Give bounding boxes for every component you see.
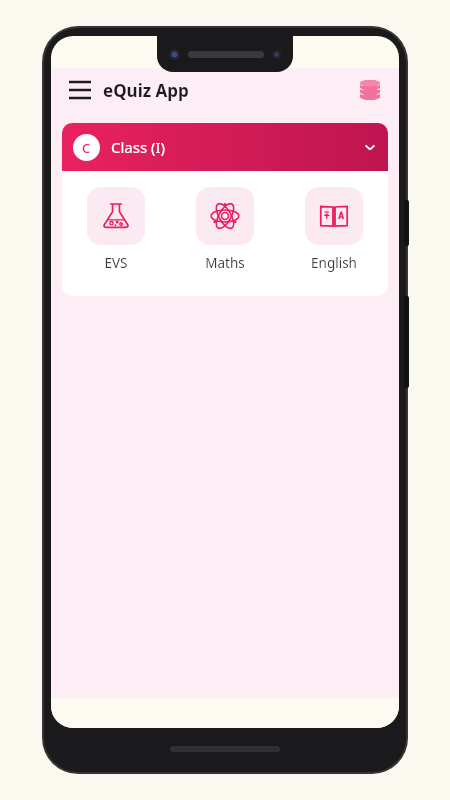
staticText: Class (I) <box>111 137 166 157</box>
button[interactable]: English <box>279 185 388 274</box>
button[interactable]: C <box>62 123 388 171</box>
button[interactable]: Maths <box>170 185 279 274</box>
staticText: EVS <box>104 254 128 272</box>
staticText: Maths <box>205 254 245 272</box>
staticText: C <box>82 139 91 157</box>
staticText: English <box>311 254 357 272</box>
staticText: eQuiz App <box>103 79 189 102</box>
button[interactable]: Open navigation menu <box>63 73 97 107</box>
button[interactable]: EVS <box>62 185 170 274</box>
button[interactable]: Coins <box>355 75 385 105</box>
